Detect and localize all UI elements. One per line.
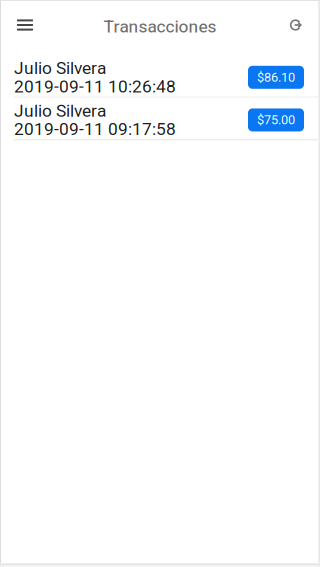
button[interactable]: Log out (274, 0, 317, 50)
staticText: Transacciones (103, 16, 216, 37)
button[interactable]: Julio Silvera (0, 55, 320, 98)
button[interactable]: Julio Silvera (0, 98, 320, 140)
staticText: $86.10 (257, 70, 295, 85)
staticText: Julio Silvera (14, 101, 106, 121)
staticText: Julio Silvera (14, 58, 106, 78)
staticText: 2019-09-11 09:17:58 (14, 119, 176, 139)
staticText: $75.00 (257, 112, 295, 127)
staticText: 2019-09-11 10:26:48 (14, 76, 176, 97)
button[interactable]: Menu (0, 0, 50, 50)
